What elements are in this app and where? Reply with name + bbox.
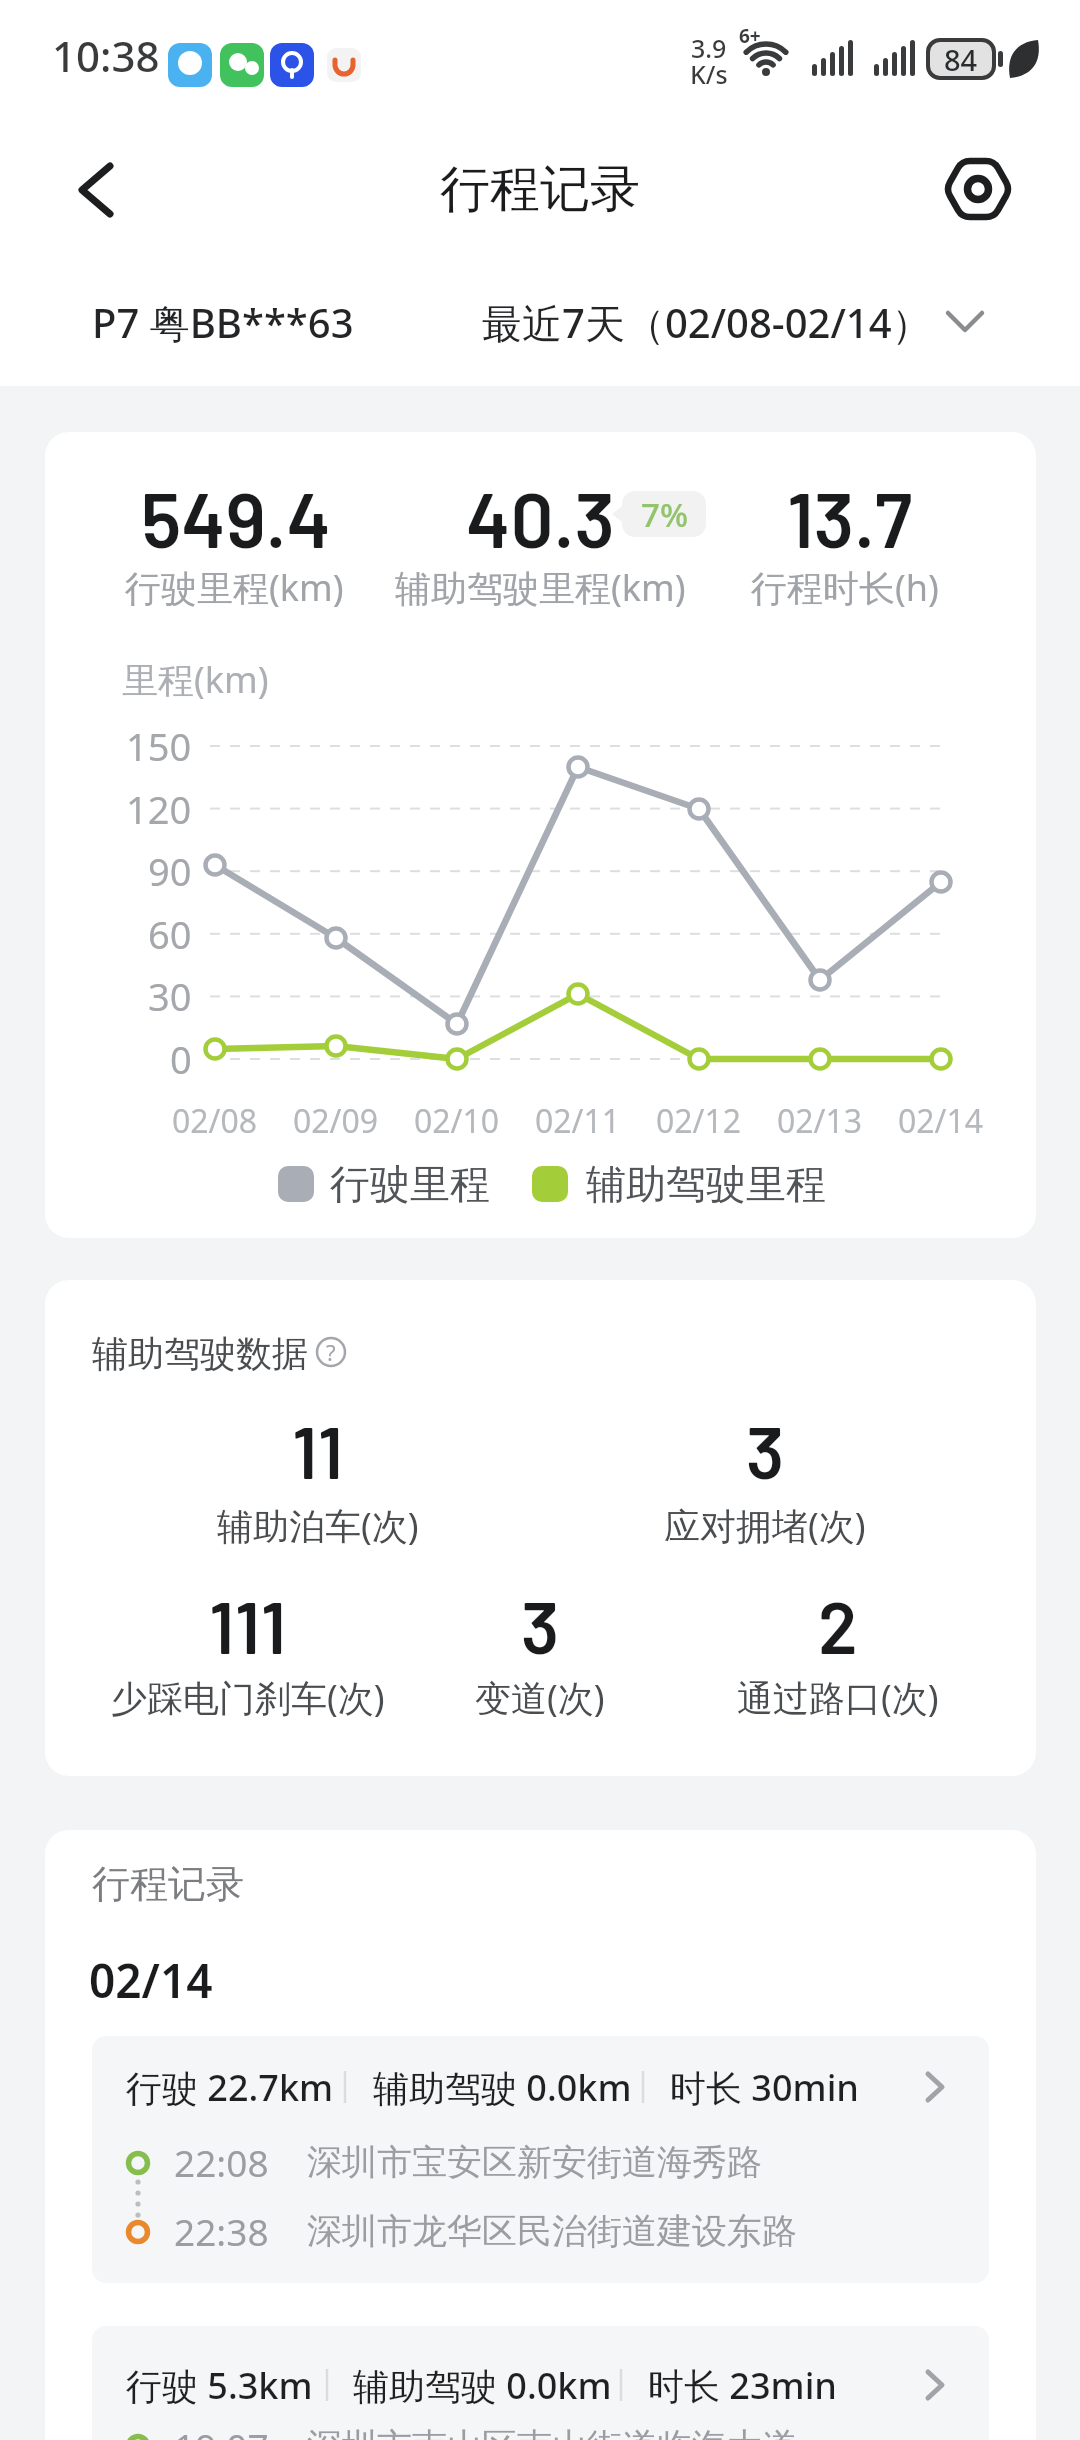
staticText: 11 bbox=[292, 1407, 344, 1493]
staticText: 2 bbox=[818, 1582, 858, 1668]
staticText: K/s bbox=[690, 57, 728, 91]
staticText: 02/13 bbox=[777, 1099, 863, 1143]
staticText: 02/12 bbox=[656, 1099, 742, 1143]
staticText: 150 bbox=[126, 720, 192, 772]
button[interactable] bbox=[92, 2326, 989, 2440]
button[interactable] bbox=[54, 150, 134, 230]
staticText: 行驶里程 bbox=[330, 1159, 490, 1209]
staticText: 02/11 bbox=[535, 1099, 621, 1143]
staticText: 3.9 bbox=[691, 31, 727, 65]
staticText: 111 bbox=[209, 1582, 287, 1668]
staticText: 辅助驾驶里程(km) bbox=[395, 563, 686, 612]
staticText: 02/10 bbox=[414, 1099, 500, 1143]
staticText: 120 bbox=[126, 783, 192, 835]
staticText: 辅助驾驶数据 bbox=[92, 1331, 308, 1376]
staticText: 辅助驾驶 0.0km bbox=[373, 2063, 632, 2112]
staticText: 深圳市南山区南山街道临海大道 bbox=[307, 2424, 797, 2440]
staticText: 84 bbox=[944, 40, 978, 79]
staticText: 6+ bbox=[739, 23, 761, 49]
staticText: 13.7 bbox=[787, 472, 913, 563]
staticText: 里程(km) bbox=[122, 655, 269, 704]
staticText: 时长 30min bbox=[670, 2063, 859, 2112]
staticText: 深圳市龙华区民治街道建设东路 bbox=[307, 2209, 797, 2253]
staticText: 02/09 bbox=[293, 1099, 379, 1143]
staticText: 19:07 bbox=[174, 2421, 269, 2440]
staticText: 深圳市宝安区新安街道海秀路 bbox=[307, 2140, 762, 2184]
staticText: 通过路口(次) bbox=[737, 1673, 939, 1722]
staticText: 02/08 bbox=[172, 1099, 258, 1143]
staticText: 22:38 bbox=[174, 2206, 269, 2256]
staticText: 时长 23min bbox=[648, 2361, 837, 2410]
staticText: 549.4 bbox=[141, 472, 331, 563]
staticText: 行程记录 bbox=[92, 1860, 244, 1908]
staticText: 40.3 bbox=[466, 472, 615, 563]
staticText: 7% bbox=[641, 492, 688, 537]
staticText: 90 bbox=[148, 845, 192, 897]
staticText: 3 bbox=[746, 1407, 785, 1493]
staticText: 行驶 5.3km bbox=[126, 2361, 313, 2410]
staticText: 10:38 bbox=[52, 27, 160, 84]
staticText: 最近7天（02/08-02/14） bbox=[482, 295, 932, 350]
staticText: 60 bbox=[148, 908, 192, 960]
button[interactable] bbox=[470, 285, 1000, 360]
staticText: 22:08 bbox=[174, 2137, 269, 2187]
staticText: 少踩电门刹车(次) bbox=[111, 1673, 385, 1722]
staticText: ? bbox=[326, 1337, 336, 1367]
staticText: P7 粤BB***63 bbox=[92, 295, 354, 350]
staticText: 辅助驾驶里程 bbox=[586, 1159, 826, 1209]
button[interactable] bbox=[92, 2036, 989, 2283]
staticText: 辅助泊车(次) bbox=[217, 1501, 419, 1550]
staticText: 应对拥堵(次) bbox=[664, 1501, 866, 1550]
staticText: 行驶 22.7km bbox=[126, 2063, 334, 2112]
staticText: 行驶里程(km) bbox=[125, 563, 344, 612]
button[interactable] bbox=[938, 152, 1018, 228]
staticText: 0 bbox=[170, 1033, 192, 1085]
staticText: 行程记录 bbox=[440, 158, 640, 221]
staticText: 02/14 bbox=[898, 1099, 984, 1143]
staticText: 30 bbox=[148, 970, 192, 1022]
staticText: 变道(次) bbox=[475, 1673, 605, 1722]
staticText: 行程时长(h) bbox=[751, 563, 939, 612]
staticText: 02/14 bbox=[89, 1949, 213, 2012]
staticText: 3 bbox=[521, 1582, 560, 1668]
staticText: 辅助驾驶 0.0km bbox=[353, 2361, 612, 2410]
